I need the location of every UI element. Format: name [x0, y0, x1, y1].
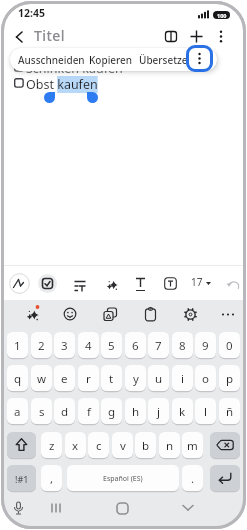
button[interactable]: 1: [7, 332, 28, 359]
staticText: l: [204, 404, 207, 420]
staticText: y: [133, 371, 139, 387]
button[interactable]: w: [31, 365, 52, 392]
button[interactable]: d: [54, 398, 75, 425]
button[interactable]: [164, 30, 178, 43]
button[interactable]: i: [172, 365, 193, 392]
staticText: d: [61, 404, 69, 420]
button[interactable]: h: [125, 398, 146, 425]
button[interactable]: 4: [78, 332, 99, 359]
staticText: w: [37, 371, 47, 387]
staticText: Schinken kaufen: [26, 60, 123, 77]
button[interactable]: o: [195, 365, 216, 392]
button[interactable]: [103, 307, 118, 322]
button[interactable]: e: [54, 365, 75, 392]
staticText: Obst kaufen: [26, 76, 98, 93]
staticText: .: [191, 471, 195, 487]
button[interactable]: [134, 277, 147, 292]
button[interactable]: [12, 29, 28, 45]
button[interactable]: r: [78, 365, 99, 392]
button[interactable]: [12, 501, 25, 516]
button[interactable]: [73, 278, 88, 293]
button[interactable]: q: [7, 365, 28, 392]
button[interactable]: s: [31, 398, 52, 425]
button[interactable]: [183, 307, 198, 322]
button[interactable]: j: [148, 398, 169, 425]
button[interactable]: g: [101, 398, 122, 425]
button[interactable]: b: [135, 432, 156, 459]
button[interactable]: [144, 307, 157, 322]
staticText: 17: [191, 275, 203, 289]
button[interactable]: 7: [148, 332, 169, 359]
button[interactable]: Ausschneiden: [16, 48, 86, 71]
button[interactable]: 17: [190, 275, 216, 291]
button[interactable]: 5: [101, 332, 122, 359]
button[interactable]: c: [88, 432, 109, 459]
button[interactable]: [210, 432, 240, 459]
button[interactable]: [216, 30, 226, 43]
staticText: r: [86, 371, 91, 387]
staticText: ñ: [226, 404, 234, 420]
button[interactable]: 3: [54, 332, 75, 359]
staticText: t: [109, 371, 114, 387]
button[interactable]: 0: [219, 332, 240, 359]
button[interactable]: [210, 465, 240, 492]
button[interactable]: [190, 30, 203, 43]
staticText: 2: [38, 338, 45, 354]
button[interactable]: m: [182, 432, 203, 459]
staticText: b: [142, 438, 150, 454]
button[interactable]: u: [148, 365, 169, 392]
button[interactable]: [12, 77, 182, 94]
button[interactable]: [24, 304, 46, 323]
button[interactable]: p: [219, 365, 240, 392]
button[interactable]: z: [41, 432, 62, 459]
button[interactable]: l: [195, 398, 216, 425]
button[interactable]: ñ: [219, 398, 240, 425]
button[interactable]: 8: [172, 332, 193, 359]
button[interactable]: [164, 277, 177, 290]
staticText: i: [181, 371, 184, 387]
button[interactable]: [226, 278, 242, 292]
button[interactable]: k: [172, 398, 193, 425]
button[interactable]: [9, 273, 30, 294]
button[interactable]: t: [101, 365, 122, 392]
button[interactable]: !#1: [7, 465, 36, 492]
staticText: n: [166, 438, 174, 454]
staticText: 8: [179, 338, 186, 354]
button[interactable]: Kopieren: [86, 48, 135, 71]
button[interactable]: a: [7, 398, 28, 425]
button[interactable]: 2: [31, 332, 52, 359]
staticText: 7: [155, 338, 162, 354]
button[interactable]: [116, 502, 129, 515]
staticText: j: [157, 404, 160, 420]
staticText: 9: [202, 338, 209, 354]
button[interactable]: x: [65, 432, 86, 459]
staticText: 1: [14, 338, 21, 354]
staticText: 6: [132, 338, 139, 354]
button[interactable]: [7, 432, 36, 459]
staticText: a: [14, 404, 21, 420]
staticText: o: [202, 371, 209, 387]
button[interactable]: 6: [125, 332, 146, 359]
button[interactable]: f: [78, 398, 99, 425]
button[interactable]: [50, 502, 64, 514]
button[interactable]: [104, 276, 121, 294]
button[interactable]: Español (ES): [67, 465, 179, 492]
button[interactable]: [181, 503, 195, 512]
staticText: Español (ES): [103, 474, 143, 484]
button[interactable]: n: [159, 432, 180, 459]
staticText: u: [155, 371, 163, 387]
button[interactable]: [63, 307, 77, 321]
button[interactable]: 9: [195, 332, 216, 359]
staticText: Kopieren: [89, 53, 133, 67]
button[interactable]: ,: [41, 465, 62, 492]
button[interactable]: [186, 45, 213, 72]
button[interactable]: .: [182, 465, 203, 492]
button[interactable]: [38, 274, 57, 293]
button[interactable]: [221, 312, 235, 317]
staticText: x: [72, 438, 79, 454]
staticText: f: [87, 404, 91, 420]
staticText: 4: [85, 338, 92, 354]
button[interactable]: y: [125, 365, 146, 392]
button[interactable]: Übersetzen: [136, 48, 196, 71]
button[interactable]: v: [112, 432, 133, 459]
